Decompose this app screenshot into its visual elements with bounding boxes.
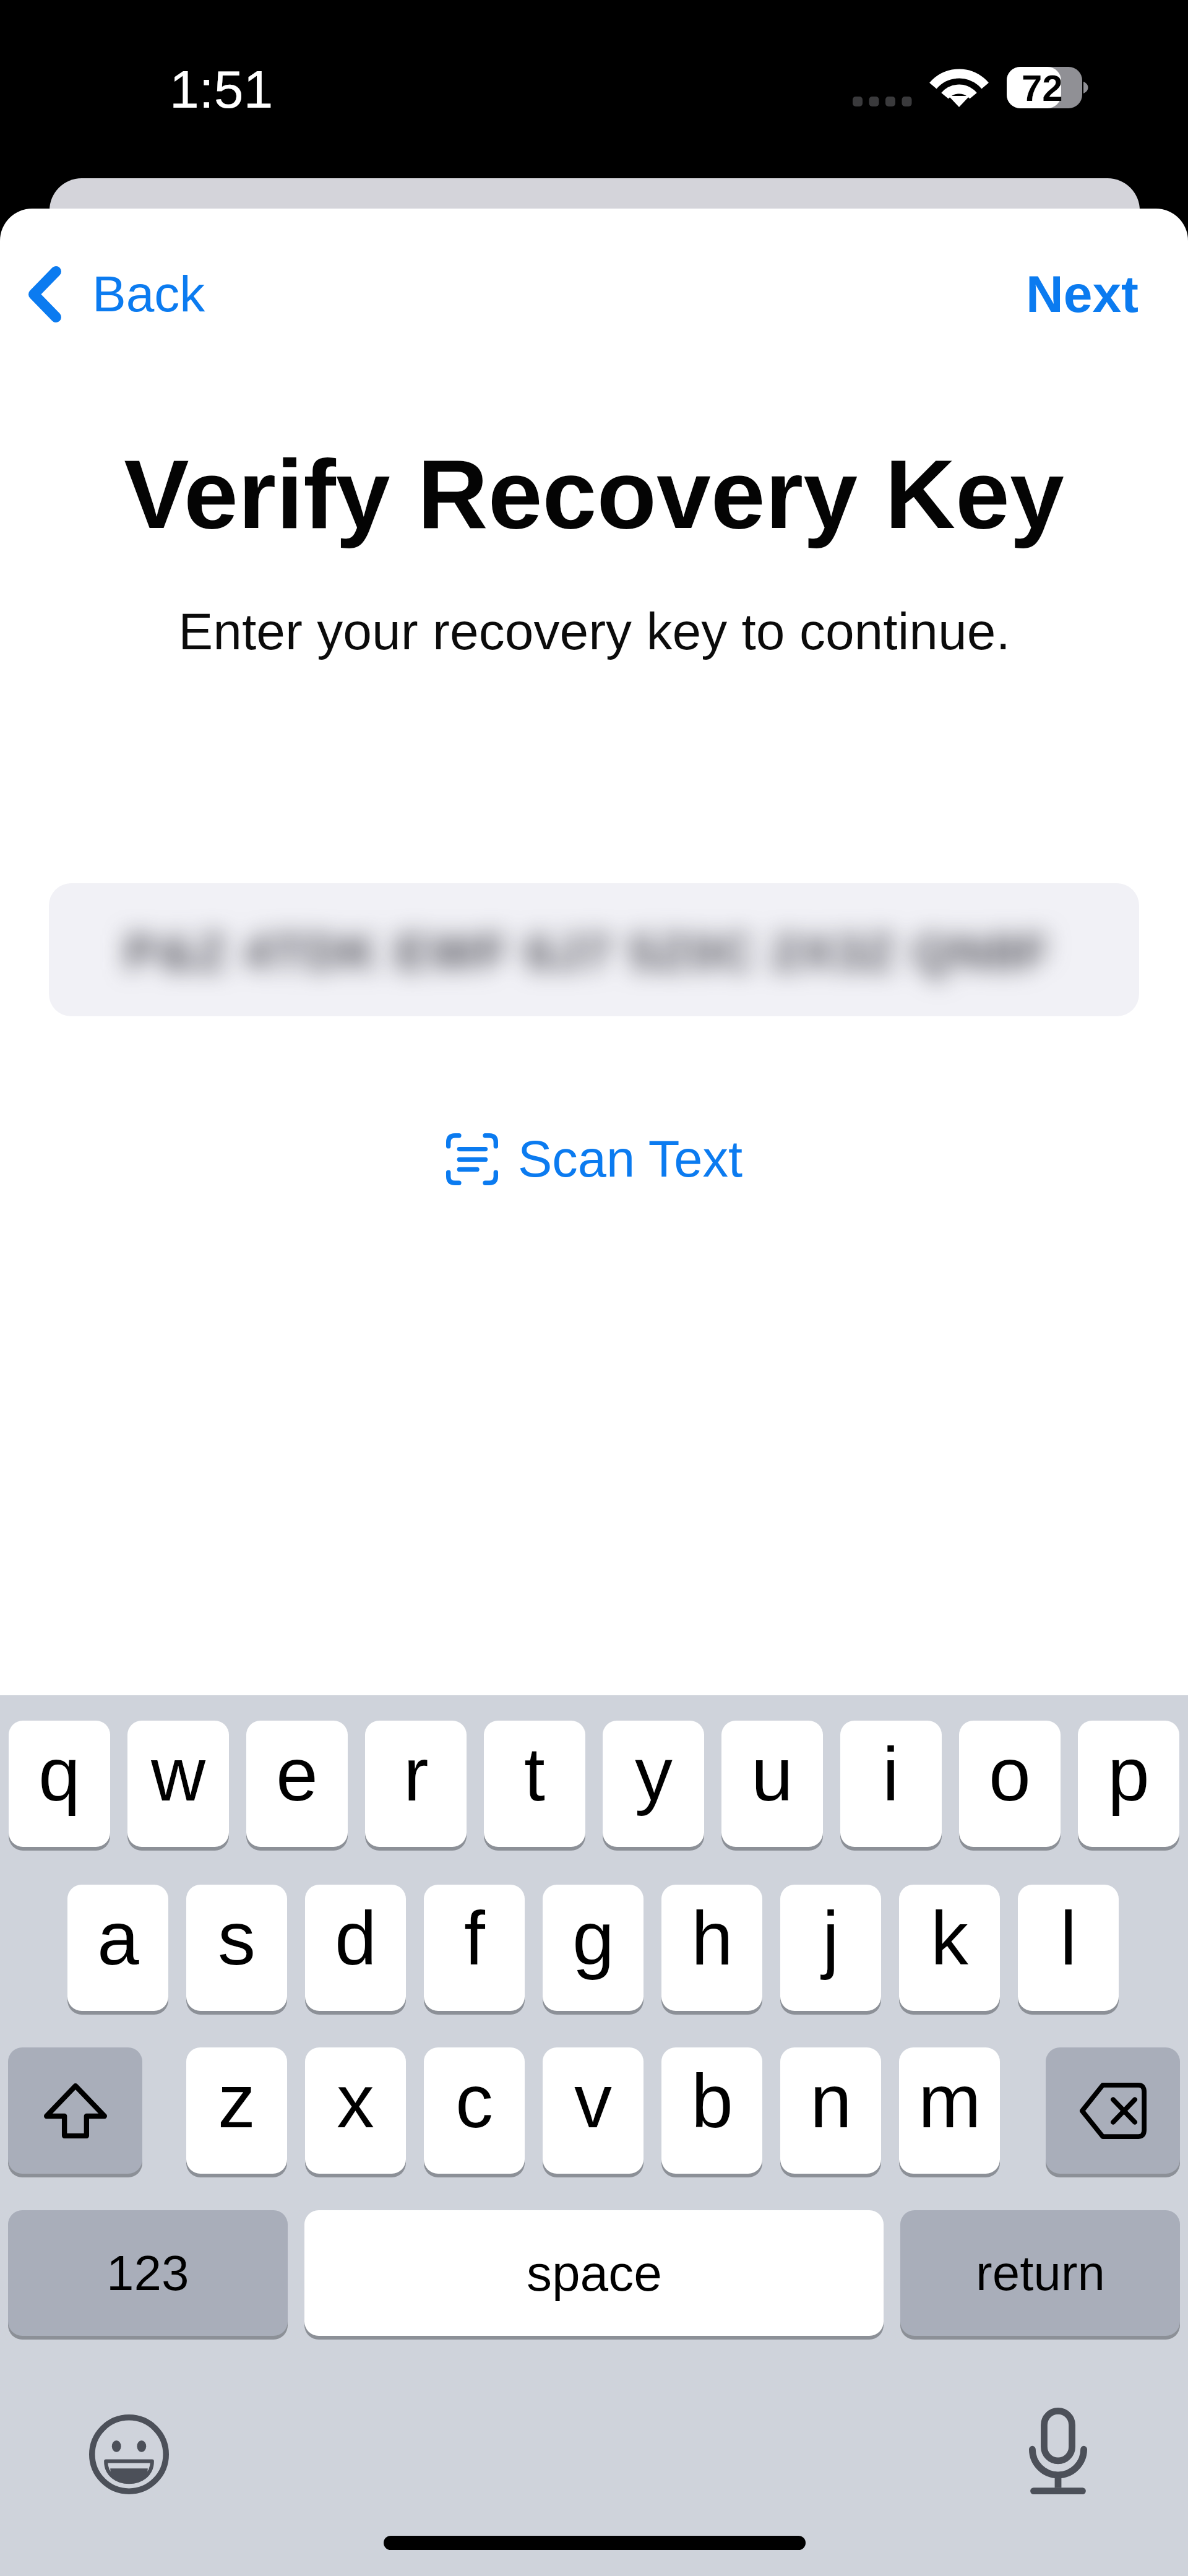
button[interactable]: v [543, 2047, 643, 2174]
staticText: 1:51 [170, 59, 273, 119]
staticText: b [691, 2059, 733, 2143]
button[interactable]: Dictation [1029, 2408, 1087, 2494]
button[interactable]: i [840, 1721, 942, 1847]
button[interactable]: e [246, 1721, 348, 1847]
button[interactable]: space [304, 2210, 884, 2336]
button[interactable]: Scan Text [433, 1122, 756, 1196]
button[interactable]: Next [1016, 255, 1149, 333]
staticText: v [574, 2059, 612, 2143]
button[interactable]: P&Z 4TDK EWF 6J7 5Z0C 2X3Z QN8F [49, 883, 1139, 1016]
staticText: t [524, 1732, 545, 1817]
button[interactable]: g [543, 1885, 643, 2011]
staticText: p [1108, 1732, 1150, 1817]
button[interactable]: n [780, 2047, 881, 2174]
button[interactable]: Backspace [1046, 2047, 1180, 2174]
staticText: y [635, 1732, 673, 1817]
staticText: w [151, 1732, 206, 1817]
button[interactable]: c [424, 2047, 525, 2174]
staticText: space [527, 2245, 662, 2302]
staticText: s [218, 1896, 256, 1981]
staticText: o [989, 1732, 1031, 1817]
button[interactable]: t [484, 1721, 585, 1847]
staticText: Next [1026, 265, 1139, 323]
staticText: u [751, 1732, 793, 1817]
staticText: return [976, 2245, 1105, 2301]
button[interactable]: u [721, 1721, 823, 1847]
button[interactable]: a [67, 1885, 168, 2011]
staticText: Verify Recovery Key [124, 439, 1064, 549]
button[interactable]: l [1018, 1885, 1119, 2011]
button[interactable]: r [365, 1721, 467, 1847]
button[interactable]: b [661, 2047, 762, 2174]
button[interactable]: s [186, 1885, 287, 2011]
staticText: k [931, 1896, 968, 1981]
staticText: a [97, 1896, 139, 1981]
button[interactable]: Emoji keyboard [89, 2414, 169, 2494]
staticText: Enter your recovery key to continue. [178, 602, 1010, 660]
button[interactable]: Back [19, 256, 215, 332]
button[interactable]: 123 [8, 2210, 288, 2336]
staticText: m [918, 2059, 981, 2143]
button[interactable]: j [780, 1885, 881, 2011]
button[interactable]: y [603, 1721, 704, 1847]
staticText: q [38, 1732, 80, 1817]
staticText: n [810, 2059, 852, 2143]
button[interactable]: z [186, 2047, 287, 2174]
button[interactable]: d [305, 1885, 406, 2011]
staticText: d [335, 1896, 377, 1981]
button[interactable]: m [899, 2047, 1000, 2174]
button[interactable]: p [1078, 1721, 1179, 1847]
button[interactable]: q [9, 1721, 110, 1847]
staticText: c [455, 2059, 493, 2143]
staticText: z [218, 2059, 256, 2143]
button[interactable]: Shift [8, 2047, 142, 2174]
staticText: f [464, 1896, 485, 1981]
staticText: 72 [1022, 67, 1063, 109]
staticText: e [276, 1732, 318, 1817]
button[interactable]: o [959, 1721, 1061, 1847]
staticText: 123 [106, 2245, 189, 2301]
staticText: Scan Text [518, 1130, 742, 1188]
staticText: l [1060, 1896, 1077, 1981]
button[interactable]: f [424, 1885, 525, 2011]
staticText: j [822, 1896, 840, 1981]
staticText: g [572, 1896, 614, 1981]
button[interactable]: w [127, 1721, 229, 1847]
button[interactable]: h [661, 1885, 762, 2011]
staticText: P&Z 4TDK EWF 6J7 5Z0C 2X3Z QN8F [124, 925, 1051, 980]
staticText: Back [92, 266, 205, 322]
staticText: i [882, 1732, 900, 1817]
staticText: h [691, 1896, 733, 1981]
staticText: r [403, 1732, 429, 1817]
button[interactable]: x [305, 2047, 406, 2174]
staticText: x [337, 2059, 374, 2143]
button[interactable]: k [899, 1885, 1000, 2011]
button[interactable]: return [900, 2210, 1180, 2336]
